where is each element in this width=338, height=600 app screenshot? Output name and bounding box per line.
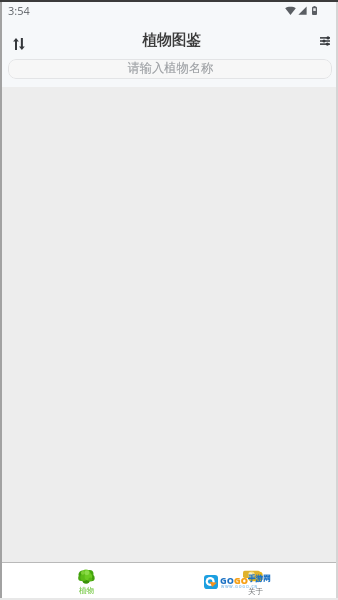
staticText: 植物图鉴 <box>142 31 201 50</box>
staticText: 3:54 <box>8 3 30 18</box>
button[interactable]: Filter <box>311 27 338 55</box>
button[interactable]: 请输入植物名称 <box>8 59 332 79</box>
button[interactable]: Sort <box>5 30 33 58</box>
staticText: 手游网 <box>248 574 271 584</box>
staticText: 植物 <box>79 586 94 595</box>
button[interactable]: 植物 <box>0 563 169 600</box>
staticText: GO <box>220 574 234 586</box>
staticText: W W W . G O G O . C N <box>221 584 258 589</box>
staticText: 请输入植物名称 <box>127 60 214 75</box>
staticText: GO <box>234 574 248 586</box>
button[interactable]: 关于 <box>169 563 338 600</box>
staticText: 关于 <box>248 587 263 596</box>
